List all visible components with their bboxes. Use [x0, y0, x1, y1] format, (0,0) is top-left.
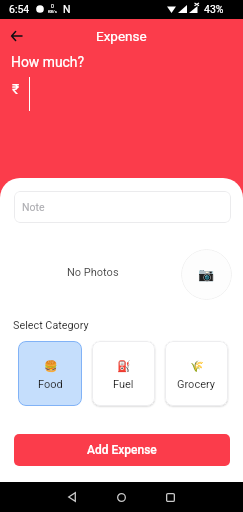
staticText: N — [63, 3, 71, 15]
staticText: No Photos — [67, 266, 119, 279]
button[interactable]: Back — [4, 24, 28, 48]
button[interactable]: ⛽ — [92, 341, 155, 406]
staticText: KB/s — [48, 9, 57, 14]
button[interactable]: Add photo — [181, 249, 232, 300]
button[interactable]: Home — [107, 483, 135, 511]
button[interactable]: 🌾 — [165, 341, 228, 406]
button[interactable]: Recent apps — [156, 483, 184, 511]
staticText: 🌾 — [190, 360, 204, 373]
staticText: 🍔 — [44, 360, 58, 373]
button[interactable]: 🍔 — [18, 341, 82, 406]
staticText: ⛽ — [117, 360, 131, 373]
staticText: 6:54 — [9, 3, 30, 15]
button[interactable]: Back — [58, 483, 86, 511]
staticText: Food — [38, 378, 63, 391]
staticText: How much? — [11, 54, 85, 70]
staticText: ₹ — [12, 81, 20, 97]
staticText: 43% — [204, 3, 224, 15]
button[interactable]: Add Expense — [14, 434, 230, 466]
staticText: 0 — [51, 3, 54, 9]
staticText: Grocery — [177, 378, 216, 391]
staticText: Expense — [96, 28, 147, 44]
staticText: Add Expense — [87, 443, 157, 457]
button[interactable]: Note — [14, 191, 231, 223]
staticText: Note — [22, 201, 45, 213]
staticText: Fuel — [113, 378, 134, 391]
staticText: Select Category — [13, 319, 89, 332]
staticText: 📷 — [198, 267, 215, 282]
